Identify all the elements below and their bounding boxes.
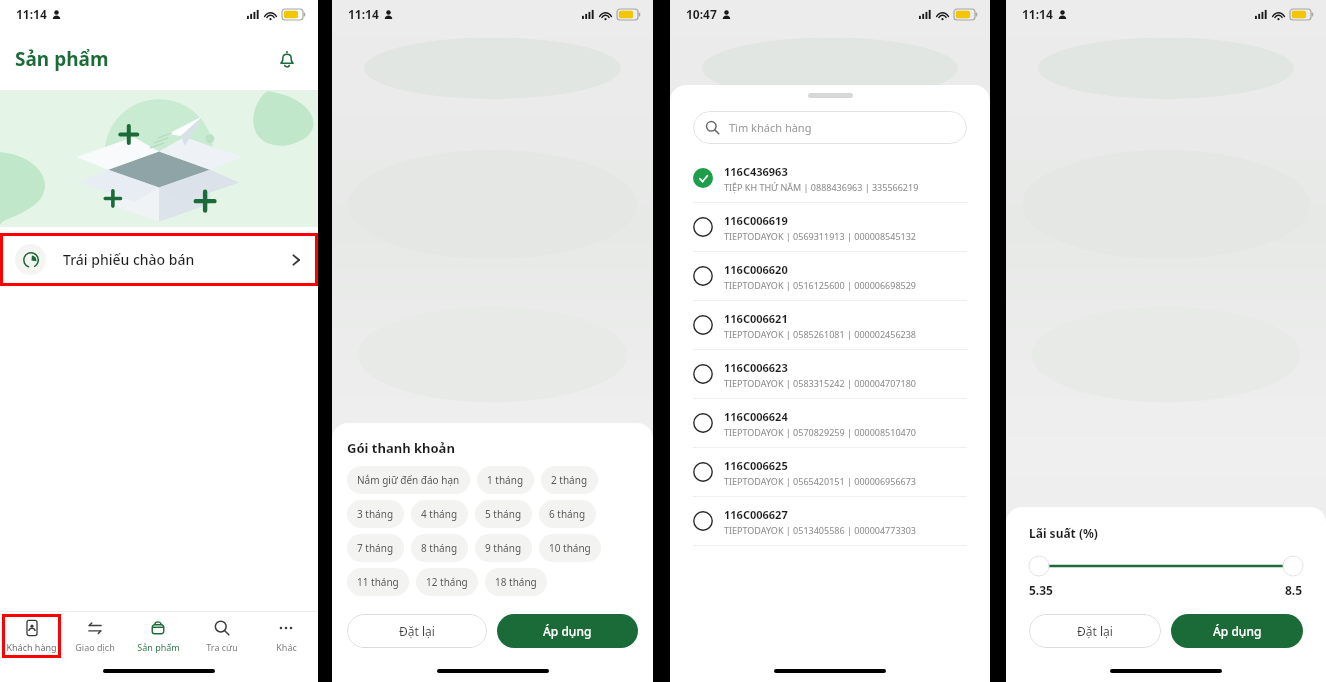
staticText: 9 tháng	[485, 541, 522, 555]
button[interactable]: Sản phẩm	[126, 612, 190, 660]
button[interactable]: 9 tháng	[475, 534, 532, 562]
staticText: Đặt lại	[1077, 623, 1113, 639]
staticText: 11 tháng	[357, 575, 399, 589]
button[interactable]: 116C006627	[670, 497, 990, 545]
staticText: 10 tháng	[549, 541, 591, 555]
staticText: Sản phẩm	[15, 46, 109, 72]
button[interactable]: Đặt lại	[1029, 614, 1161, 648]
button[interactable]: 116C006624	[670, 399, 990, 447]
staticText: TIEPTODAYOK | 0569311913 | 000008545132	[724, 230, 917, 242]
button[interactable]: Trái phiếu chào bán	[0, 233, 318, 286]
button[interactable]: 5 tháng	[475, 500, 532, 528]
staticText: Lãi suất (%)	[1029, 525, 1098, 541]
staticText: Sản phẩm	[137, 641, 180, 653]
button[interactable]: 3 tháng	[347, 500, 404, 528]
button[interactable]: 12 tháng	[416, 568, 478, 596]
button[interactable]: Áp dụng	[497, 614, 638, 648]
staticText: 18 tháng	[495, 575, 537, 589]
staticText: TIEPTODAYOK | 0585261081 | 000002456238	[724, 328, 917, 340]
button[interactable]: 116C006623	[670, 350, 990, 398]
staticText: TIEPTODAYOK | 0570829259 | 000008510470	[724, 426, 917, 438]
staticText: 116C006620	[724, 262, 788, 277]
staticText: TIEPTODAYOK | 0513405586 | 000004773303	[724, 524, 917, 536]
button[interactable]: 116C006620	[670, 252, 990, 300]
staticText: 116C006619	[724, 213, 788, 228]
button[interactable]: Khách hàng	[2, 614, 61, 658]
staticText: TIỆP KH THỨ NĂM | 0888436963 | 335566219	[724, 181, 919, 193]
button[interactable]: 11 tháng	[347, 568, 409, 596]
button[interactable]: Áp dụng	[1171, 614, 1303, 648]
button[interactable]: 18 tháng	[485, 568, 547, 596]
button[interactable]: 116C006625	[670, 448, 990, 496]
staticText: TIEPTODAYOK | 0583315242 | 000004707180	[724, 377, 917, 389]
staticText: 6 tháng	[549, 507, 586, 521]
staticText: 7 tháng	[357, 541, 394, 555]
button[interactable]: 2 tháng	[541, 466, 598, 494]
button[interactable]	[1029, 555, 1303, 577]
button[interactable]: Khác	[254, 612, 318, 660]
staticText: 12 tháng	[426, 575, 468, 589]
button[interactable]: 6 tháng	[539, 500, 596, 528]
button[interactable]: 8 tháng	[411, 534, 468, 562]
button[interactable]: 7 tháng	[347, 534, 404, 562]
staticText: Tra cứu	[206, 641, 238, 653]
button[interactable]: 116C006621	[670, 301, 990, 349]
staticText: TIEPTODAYOK | 0565420151 | 000006956673	[724, 475, 917, 487]
staticText: Áp dụng	[543, 623, 592, 639]
staticText: 116C006627	[724, 507, 788, 522]
button[interactable]: Giao dịch	[63, 612, 126, 660]
staticText: 10:47	[686, 6, 717, 22]
staticText: Khách hàng	[6, 641, 57, 653]
button[interactable]: 116C006619	[670, 203, 990, 251]
button[interactable]: Đặt lại	[347, 614, 487, 648]
button[interactable]: 10 tháng	[539, 534, 601, 562]
staticText: Khác	[276, 641, 297, 653]
staticText: Giao dịch	[75, 641, 115, 653]
staticText: 11:14	[16, 6, 47, 22]
button[interactable]: 116C436963	[670, 154, 990, 202]
staticText: Tìm khách hàng	[729, 120, 812, 135]
button[interactable]: Tra cứu	[190, 612, 254, 660]
button[interactable]: Notifications	[271, 43, 303, 75]
button[interactable]: Tìm khách hàng	[693, 111, 967, 144]
staticText: 1 tháng	[487, 473, 524, 487]
button[interactable]: 4 tháng	[411, 500, 468, 528]
staticText: 8.5	[1285, 582, 1303, 598]
staticText: 8 tháng	[421, 541, 458, 555]
staticText: Nắm giữ đến đáo hạn	[357, 473, 460, 487]
button[interactable]: 1 tháng	[477, 466, 534, 494]
staticText: 116C006623	[724, 360, 788, 375]
staticText: 2 tháng	[551, 473, 588, 487]
staticText: 5 tháng	[485, 507, 522, 521]
staticText: Gói thanh khoản	[347, 439, 455, 457]
staticText: 116C006624	[724, 409, 788, 424]
staticText: 116C006625	[724, 458, 788, 473]
staticText: TIEPTODAYOK | 0516125600 | 000006698529	[724, 279, 917, 291]
staticText: 4 tháng	[421, 507, 458, 521]
staticText: Áp dụng	[1213, 623, 1262, 639]
staticText: Đặt lại	[399, 623, 435, 639]
staticText: 5.35	[1029, 582, 1053, 598]
staticText: 3 tháng	[357, 507, 394, 521]
staticText: 116C436963	[724, 164, 788, 179]
staticText: Trái phiếu chào bán	[63, 250, 195, 269]
staticText: 116C006621	[724, 311, 788, 326]
staticText: 11:14	[348, 6, 379, 22]
staticText: 11:14	[1022, 6, 1053, 22]
button[interactable]: Nắm giữ đến đáo hạn	[347, 466, 470, 494]
